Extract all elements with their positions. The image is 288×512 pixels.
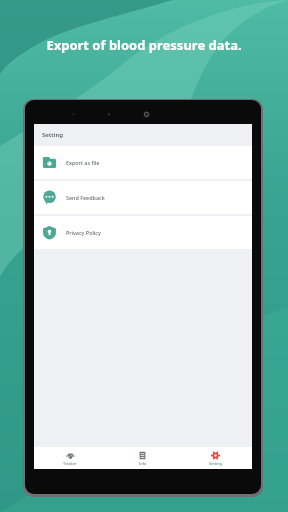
staticText: Setting: [209, 461, 222, 466]
staticText: Export as file: [66, 159, 100, 166]
button[interactable]: Info: [106, 447, 179, 469]
staticText: Send Feedback: [66, 194, 105, 201]
button[interactable]: Tracker: [34, 447, 106, 469]
button[interactable]: Privacy Policy: [34, 216, 252, 249]
staticText: Export of blood pressure data.: [0, 36, 288, 54]
staticText: Privacy Policy: [66, 229, 101, 236]
staticText: Tracker: [63, 461, 77, 466]
button[interactable]: Export as file: [34, 146, 252, 179]
button[interactable]: Setting: [179, 447, 252, 469]
button[interactable]: Send Feedback: [34, 181, 252, 214]
staticText: Setting: [42, 131, 63, 139]
staticText: Info: [139, 461, 147, 466]
